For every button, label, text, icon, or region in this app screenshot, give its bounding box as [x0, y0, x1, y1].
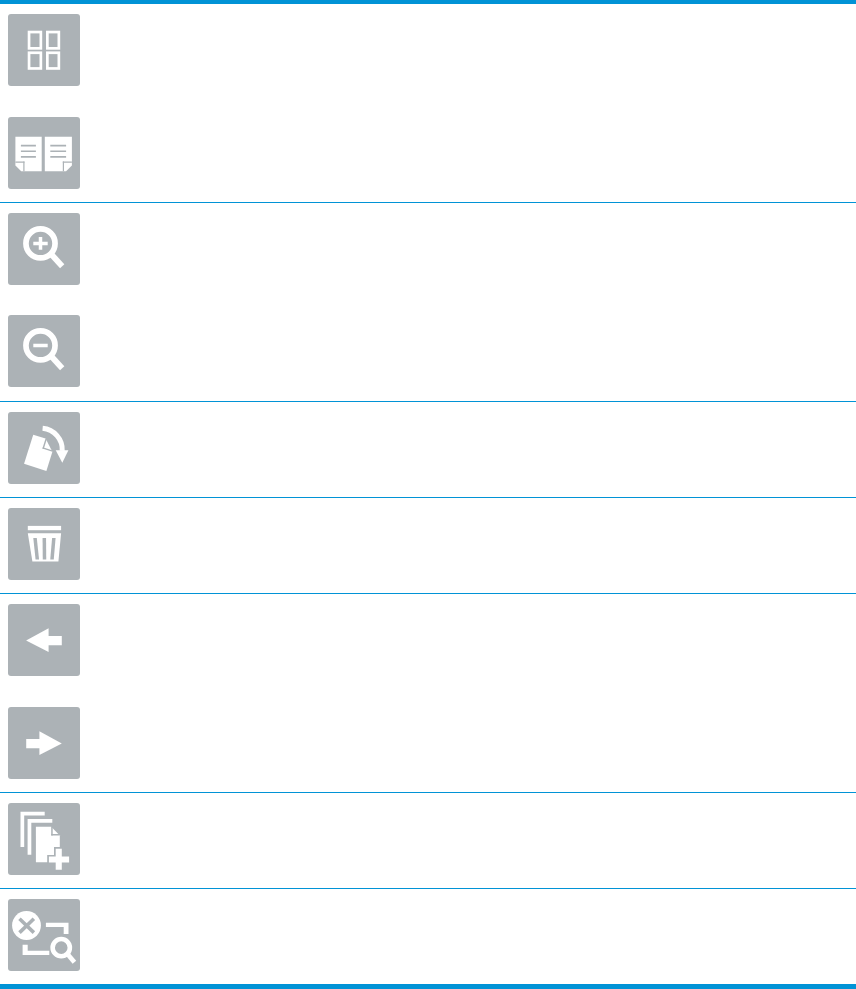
button[interactable]: Zoom in	[8, 213, 80, 285]
button[interactable]: Delete page	[8, 508, 80, 580]
button[interactable]: Rotate page	[8, 412, 80, 484]
button[interactable]: Insert pages	[8, 803, 80, 875]
button[interactable]: Two page view	[8, 117, 80, 189]
button[interactable]: Next page	[8, 707, 80, 779]
button[interactable]: Zoom out	[8, 315, 80, 387]
button[interactable]: Clear search	[8, 899, 80, 971]
button[interactable]: Thumbnail view	[8, 14, 80, 86]
button[interactable]: Previous page	[8, 604, 80, 676]
